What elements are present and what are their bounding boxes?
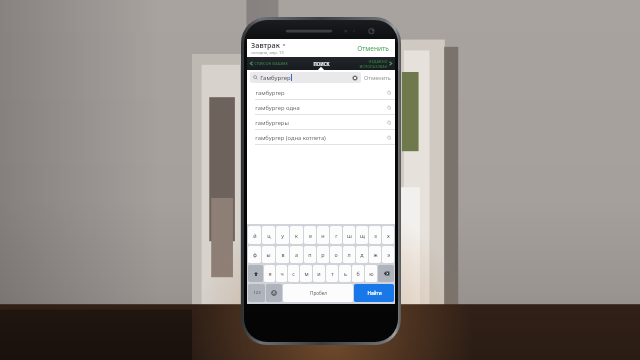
staticText: й: [253, 232, 257, 239]
button[interactable]: НЕДАВНО: [342, 57, 393, 70]
staticText: х: [387, 232, 390, 239]
staticText: Пробел: [310, 290, 327, 296]
button[interactable]: ПОИСК: [301, 57, 342, 70]
staticText: гамбургеры: [255, 119, 289, 127]
button[interactable]: и: [313, 265, 325, 282]
staticText: о: [334, 251, 338, 258]
button[interactable]: гамбургер (одна котлета): [247, 130, 395, 145]
staticText: ю: [369, 270, 374, 277]
button[interactable]: щ: [356, 226, 368, 244]
button[interactable]: ц: [262, 226, 275, 244]
staticText: л: [347, 251, 351, 258]
button[interactable]: г: [330, 226, 342, 244]
staticText: ц: [267, 232, 271, 239]
button[interactable]: д: [356, 246, 368, 263]
staticText: 123: [253, 290, 261, 296]
staticText: СПИСОК ВАШИХ: [254, 61, 288, 66]
button[interactable]: ю: [365, 265, 377, 282]
staticText: Найти: [367, 290, 382, 296]
staticText: гамбургер (одна котлета): [255, 134, 326, 142]
button[interactable]: л: [343, 246, 355, 263]
button[interactable]: б: [352, 265, 364, 282]
staticText: м: [304, 270, 309, 277]
button[interactable]: к: [290, 226, 303, 244]
button[interactable]: ь: [339, 265, 351, 282]
staticText: р: [321, 251, 325, 258]
staticText: э: [387, 251, 390, 258]
button[interactable]: н: [317, 226, 329, 244]
button[interactable]: ж: [369, 246, 381, 263]
staticText: Завтрак: [251, 40, 280, 50]
button[interactable]: Найти: [354, 284, 394, 302]
staticText: ИСПОЛЬЗОВАН: [359, 64, 388, 69]
button[interactable]: о: [330, 246, 342, 263]
staticText: п: [308, 251, 312, 258]
button[interactable]: п: [304, 246, 316, 263]
staticText: я: [268, 270, 272, 277]
staticText: и: [317, 270, 321, 277]
button[interactable]: я: [264, 265, 275, 282]
button[interactable]: Отменить: [355, 43, 391, 54]
staticText: ж: [373, 251, 378, 258]
staticText: з: [374, 232, 377, 239]
button[interactable]: Завтрак: [251, 40, 355, 56]
staticText: т: [331, 270, 334, 277]
staticText: в: [281, 251, 285, 258]
staticText: а: [295, 251, 298, 258]
button[interactable]: т: [326, 265, 338, 282]
button[interactable]: э: [382, 246, 394, 263]
staticText: у: [281, 232, 284, 239]
staticText: ш: [347, 232, 352, 239]
button[interactable]: ф: [248, 246, 261, 263]
button[interactable]: гамбургер одна: [247, 100, 395, 115]
staticText: гамбургер: [255, 89, 285, 97]
button[interactable]: 123: [248, 284, 265, 302]
button[interactable]: Отменить: [363, 73, 392, 83]
staticText: НЕДАВНО: [368, 59, 388, 64]
button[interactable]: ы: [262, 246, 275, 263]
button[interactable]: ш: [343, 226, 355, 244]
staticText: ПОИСК: [313, 61, 330, 67]
staticText: н: [321, 232, 325, 239]
button[interactable]: м: [300, 265, 312, 282]
staticText: ф: [253, 251, 257, 258]
button[interactable]: а: [290, 246, 303, 263]
staticText: е: [309, 232, 312, 239]
button[interactable]: Пробел: [283, 284, 353, 302]
staticText: ы: [266, 251, 271, 258]
button[interactable]: е: [304, 226, 316, 244]
staticText: сегодня, апр. 15: [251, 50, 284, 56]
button[interactable]: Очистить: [352, 75, 358, 81]
staticText: б: [356, 270, 360, 277]
button[interactable]: гамбургер: [247, 85, 395, 100]
button[interactable]: в: [276, 246, 289, 263]
button[interactable]: х: [382, 226, 394, 244]
staticText: г: [335, 232, 338, 239]
button[interactable]: с: [288, 265, 299, 282]
button[interactable]: Гамбургер: [250, 72, 361, 83]
staticText: ь: [344, 270, 347, 277]
button[interactable]: р: [317, 246, 329, 263]
staticText: к: [295, 232, 298, 239]
staticText: д: [360, 251, 364, 258]
button[interactable]: ч: [276, 265, 287, 282]
staticText: ч: [280, 270, 284, 277]
button[interactable]: СПИСОК ВАШИХ: [249, 57, 301, 70]
staticText: Гамбургер: [260, 74, 291, 82]
staticText: гамбургер одна: [255, 104, 300, 112]
button[interactable]: з: [369, 226, 381, 244]
staticText: Отменить: [357, 44, 389, 53]
button[interactable]: у: [276, 226, 289, 244]
staticText: Отменить: [364, 74, 391, 82]
staticText: с: [292, 270, 295, 277]
button[interactable]: Shift: [248, 265, 263, 282]
button[interactable]: Emoji: [266, 284, 282, 302]
button[interactable]: гамбургеры: [247, 115, 395, 130]
button[interactable]: й: [248, 226, 261, 244]
staticText: щ: [360, 232, 365, 239]
button[interactable]: Backspace: [378, 265, 394, 282]
